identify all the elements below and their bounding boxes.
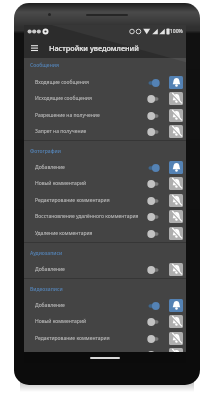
staticText: 100%: [170, 28, 183, 35]
button[interactable]: Включено: [147, 77, 160, 89]
button[interactable]: Включено: [147, 300, 160, 312]
staticText: Сообщения: [30, 62, 59, 69]
button[interactable]: Новый комментарий: [24, 175, 186, 192]
button[interactable]: Выключено: [147, 93, 160, 105]
staticText: Добавление: [35, 266, 145, 273]
staticText: Новый комментарий: [35, 318, 145, 325]
button[interactable]: Уведомления включены: [169, 76, 183, 89]
button[interactable]: Новый комментарий: [24, 313, 186, 330]
staticText: Редактирование комментария: [35, 197, 145, 204]
button[interactable]: Редактирование комментария: [24, 192, 186, 209]
button[interactable]: Выключено: [147, 178, 160, 190]
button[interactable]: Восстановление удалённого комментария: [24, 208, 186, 225]
button[interactable]: Восстановление удалённого комментария: [24, 346, 186, 363]
staticText: Исходящие сообщения: [35, 95, 145, 102]
button[interactable]: Уведомления выключены: [169, 194, 183, 207]
button[interactable]: Уведомления включены: [169, 299, 183, 312]
staticText: Новый комментарий: [35, 180, 145, 187]
button[interactable]: Выключено: [147, 333, 160, 345]
button[interactable]: Запрет на получение: [24, 123, 186, 140]
button[interactable]: Уведомления выключены: [169, 92, 183, 105]
staticText: Редактирование комментария: [35, 335, 145, 342]
staticText: Удаление комментария: [35, 230, 145, 237]
staticText: Видеозаписи: [30, 286, 63, 293]
staticText: Восстановление удалённого комментария: [35, 351, 145, 358]
button[interactable]: Уведомления выключены: [169, 177, 183, 190]
button[interactable]: Удаление комментария: [24, 225, 186, 242]
staticText: Запрет на получение: [35, 128, 145, 135]
button[interactable]: Уведомления выключены: [169, 315, 183, 328]
staticText: Восстановление удалённого комментария: [35, 213, 145, 220]
button[interactable]: Уведомления включены: [169, 161, 183, 174]
button[interactable]: Выключено: [147, 316, 160, 328]
button[interactable]: Входящие сообщения: [24, 74, 186, 91]
button[interactable]: Добавление: [24, 297, 186, 314]
button[interactable]: Уведомления выключены: [169, 332, 183, 345]
button[interactable]: Выключено: [147, 228, 160, 240]
button[interactable]: Исходящие сообщения: [24, 90, 186, 107]
button[interactable]: Включено: [147, 162, 160, 174]
button[interactable]: Уведомления выключены: [169, 109, 183, 122]
button[interactable]: Выключено: [147, 126, 160, 138]
staticText: Входящие сообщения: [35, 79, 145, 86]
staticText: Разрешение на получение: [35, 112, 145, 119]
staticText: Фотографии: [30, 148, 61, 155]
button[interactable]: Выключено: [147, 110, 160, 122]
staticText: Добавление: [35, 302, 145, 309]
button[interactable]: Открыть меню: [24, 37, 44, 58]
button[interactable]: Уведомления выключены: [169, 348, 183, 361]
button[interactable]: Уведомления выключены: [169, 227, 183, 240]
staticText: Добавление: [35, 164, 145, 171]
button[interactable]: Уведомления выключены: [169, 210, 183, 223]
button[interactable]: Выключено: [147, 211, 160, 223]
staticText: Настройки уведомлений: [49, 43, 139, 53]
button[interactable]: Редактирование комментария: [24, 330, 186, 347]
staticText: Аудиозаписи: [30, 250, 63, 257]
button[interactable]: Разрешение на получение: [24, 107, 186, 124]
button[interactable]: Выключено: [147, 195, 160, 207]
button[interactable]: Выключено: [147, 264, 160, 276]
button[interactable]: Выключено: [147, 349, 160, 361]
button[interactable]: Уведомления выключены: [169, 263, 183, 276]
button[interactable]: Добавление: [24, 159, 186, 176]
button[interactable]: Добавление: [24, 261, 186, 278]
button[interactable]: Уведомления выключены: [169, 125, 183, 138]
